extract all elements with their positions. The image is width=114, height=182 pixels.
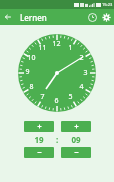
staticText: 11 [38, 43, 47, 53]
staticText: 19 [34, 134, 44, 145]
staticText: 5 [68, 92, 73, 102]
staticText: 15:23 [102, 2, 113, 7]
staticText: : [56, 134, 59, 145]
staticText: 4 [79, 82, 84, 92]
staticText: 10 [27, 53, 36, 63]
staticText: 7 [40, 92, 45, 102]
button[interactable]: History [85, 10, 99, 24]
staticText: 12 [52, 39, 61, 49]
staticText: 8 [29, 82, 34, 92]
button[interactable]: Decrease minutes [61, 147, 91, 158]
staticText: 1 [68, 43, 73, 53]
button[interactable]: Decrease hours [24, 147, 54, 158]
staticText: Lernen [20, 12, 47, 23]
button[interactable]: Increase hours [24, 121, 54, 132]
button[interactable]: Increase minutes [61, 121, 91, 132]
staticText: 3 [83, 68, 88, 78]
staticText: 6 [54, 96, 59, 106]
staticText: 09 [71, 134, 81, 145]
button[interactable]: Back [1, 10, 15, 24]
button[interactable]: Settings [99, 10, 113, 24]
staticText: 2 [79, 53, 84, 63]
staticText: 9 [25, 67, 30, 77]
